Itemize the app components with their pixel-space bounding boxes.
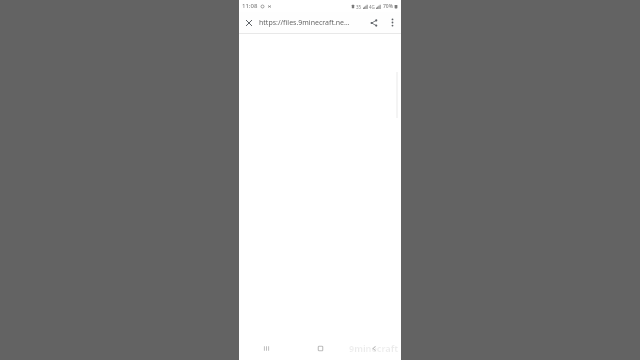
staticText: 9minecraft	[349, 342, 399, 354]
button[interactable]: Back	[347, 336, 401, 360]
button[interactable]: Close	[239, 12, 259, 33]
button[interactable]: More options	[383, 12, 401, 33]
staticText: https://files.9minecraft.ne…	[259, 18, 350, 28]
button[interactable]: Home	[293, 336, 347, 360]
staticText: 35	[356, 4, 362, 10]
staticText: 11:08	[242, 2, 258, 10]
staticText: 4G	[369, 4, 375, 10]
button[interactable]: https://files.9minecraft.ne…	[259, 12, 364, 33]
staticText: 70%	[383, 3, 393, 10]
button[interactable]: Recent apps	[239, 336, 293, 360]
button[interactable]: Share	[364, 12, 383, 33]
